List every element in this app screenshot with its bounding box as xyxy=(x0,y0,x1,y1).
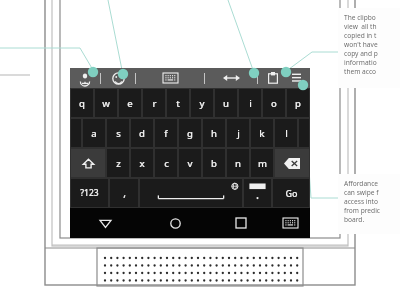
staticText: copied in t xyxy=(344,31,377,40)
button[interactable]: Space xyxy=(140,179,242,207)
button[interactable]: w xyxy=(95,89,117,117)
button[interactable]: , xyxy=(110,179,138,207)
button[interactable]: f xyxy=(155,119,177,147)
button[interactable]: p xyxy=(287,89,309,117)
button[interactable]: c xyxy=(155,149,177,177)
staticText: n xyxy=(235,157,241,170)
button[interactable]: e xyxy=(119,89,141,117)
staticText: z xyxy=(116,157,121,170)
staticText: board. xyxy=(344,215,365,224)
button[interactable]: Voice input xyxy=(70,68,100,88)
button[interactable]: Clipboard xyxy=(258,68,288,88)
button[interactable]: r xyxy=(143,89,165,117)
staticText: e xyxy=(127,97,133,110)
button[interactable]: x xyxy=(131,149,153,177)
staticText: won't have xyxy=(344,40,378,49)
button[interactable]: g xyxy=(179,119,201,147)
button[interactable]: Home xyxy=(140,208,210,238)
staticText: r xyxy=(152,97,157,110)
button[interactable]: Move cursor xyxy=(205,68,257,88)
staticText: j xyxy=(237,127,240,140)
staticText: copy and p xyxy=(344,49,378,58)
button[interactable]: u xyxy=(215,89,237,117)
button[interactable]: a xyxy=(83,119,105,147)
staticText: can swipe f xyxy=(344,188,379,197)
staticText: k xyxy=(259,127,265,140)
staticText: Affordance xyxy=(344,179,379,188)
staticText: informatio xyxy=(344,58,377,67)
staticText: t xyxy=(176,97,180,110)
staticText: o xyxy=(271,97,277,110)
button[interactable]: Switch keyboard xyxy=(271,208,310,238)
button[interactable]: n xyxy=(227,149,249,177)
staticText: view all th xyxy=(344,22,377,31)
button[interactable]: Emoji xyxy=(101,68,135,88)
staticText: v xyxy=(187,157,193,170)
staticText: s xyxy=(116,127,121,140)
button[interactable]: ?123 xyxy=(71,179,108,207)
button[interactable]: Menu xyxy=(288,68,304,88)
button[interactable]: q xyxy=(71,89,93,117)
staticText: x xyxy=(139,157,145,170)
button[interactable]: y xyxy=(191,89,213,117)
button[interactable]: d xyxy=(131,119,153,147)
staticText: access into xyxy=(344,197,378,206)
staticText: from predic xyxy=(344,206,381,215)
button[interactable]: z xyxy=(107,149,129,177)
button[interactable]: j xyxy=(227,119,249,147)
button[interactable]: o xyxy=(263,89,285,117)
staticText: g xyxy=(187,127,193,140)
staticText: h xyxy=(211,127,217,140)
button[interactable]: Go xyxy=(273,179,309,207)
button[interactable]: Back xyxy=(70,208,140,238)
button[interactable]: t xyxy=(167,89,189,117)
button[interactable]: Backspace xyxy=(275,149,309,177)
staticText: q xyxy=(79,97,85,110)
button[interactable]: b xyxy=(203,149,225,177)
staticText: a xyxy=(91,127,97,140)
button[interactable]: Recents xyxy=(210,208,271,238)
staticText: y xyxy=(199,97,205,110)
button[interactable]: v xyxy=(179,149,201,177)
staticText: Go xyxy=(285,187,298,199)
staticText: l xyxy=(285,127,288,140)
button[interactable]: s xyxy=(107,119,129,147)
button[interactable]: Keyboard settings xyxy=(136,68,204,88)
button[interactable]: h xyxy=(203,119,225,147)
button[interactable]: k xyxy=(251,119,273,147)
staticText: m xyxy=(258,157,267,170)
staticText: The clipbo xyxy=(344,13,376,22)
staticText: i xyxy=(249,97,252,110)
staticText: , xyxy=(123,186,126,200)
button[interactable]: m xyxy=(251,149,273,177)
staticText: them acco xyxy=(344,67,377,76)
button[interactable]: Period xyxy=(244,179,271,207)
button[interactable]: Shift xyxy=(71,149,105,177)
staticText: w xyxy=(102,97,110,110)
staticText: ?123 xyxy=(80,187,99,199)
staticText: p xyxy=(295,97,301,110)
staticText: d xyxy=(139,127,145,140)
staticText: b xyxy=(211,157,217,170)
staticText: f xyxy=(164,127,168,140)
button[interactable]: l xyxy=(275,119,297,147)
staticText: u xyxy=(223,97,229,110)
staticText: c xyxy=(164,157,169,170)
button[interactable]: i xyxy=(239,89,261,117)
